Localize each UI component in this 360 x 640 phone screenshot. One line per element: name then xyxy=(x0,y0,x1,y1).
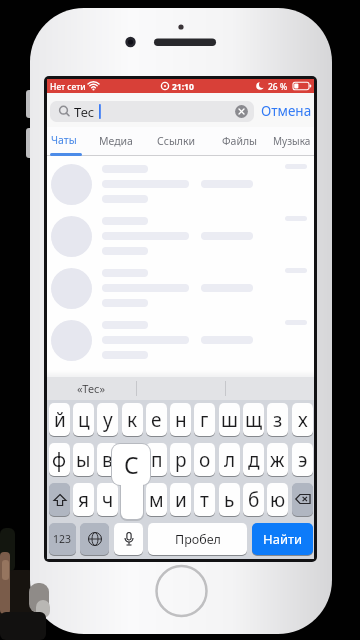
staticText: ю xyxy=(270,487,286,513)
staticText: з xyxy=(273,407,283,433)
staticText: «Тес» xyxy=(77,381,106,396)
button[interactable]: ж xyxy=(267,443,288,476)
staticText: в xyxy=(102,447,113,473)
button[interactable]: и xyxy=(170,483,191,516)
staticText: 123 xyxy=(53,532,72,546)
staticText: а xyxy=(127,447,138,473)
button[interactable]: р xyxy=(170,443,191,476)
button[interactable]: л xyxy=(219,443,240,476)
button[interactable] xyxy=(80,523,109,555)
button[interactable]: э xyxy=(292,443,313,476)
staticText: к xyxy=(127,407,138,433)
button[interactable]: п xyxy=(146,443,167,476)
button[interactable]: щ xyxy=(243,403,264,436)
button[interactable] xyxy=(47,314,314,366)
button[interactable] xyxy=(51,164,92,205)
button[interactable]: ц xyxy=(73,403,94,436)
staticText: щ xyxy=(245,407,263,433)
button[interactable]: в xyxy=(97,443,118,476)
button[interactable]: х xyxy=(292,403,313,436)
button[interactable]: т xyxy=(194,483,215,516)
button[interactable]: ь xyxy=(219,483,240,516)
staticText: ч xyxy=(102,487,114,513)
staticText: ф xyxy=(52,447,67,473)
button[interactable]: Файлы xyxy=(222,134,258,148)
staticText: Медиа xyxy=(99,134,133,148)
button[interactable] xyxy=(47,210,314,262)
button[interactable]: я xyxy=(73,483,94,516)
button[interactable]: ф xyxy=(49,443,70,476)
button[interactable] xyxy=(49,483,70,516)
button[interactable]: Ссылки xyxy=(157,134,196,148)
button[interactable]: Пробел xyxy=(148,523,247,555)
staticText: Ссылки xyxy=(157,134,196,148)
button[interactable] xyxy=(114,523,143,555)
staticText: ы xyxy=(76,447,91,473)
staticText: н xyxy=(175,407,187,433)
button[interactable]: 123 xyxy=(49,523,76,555)
button[interactable]: Чаты xyxy=(51,133,77,147)
staticText: ь xyxy=(224,487,235,513)
button[interactable]: у xyxy=(97,403,118,436)
staticText: э xyxy=(298,447,308,473)
button[interactable]: й xyxy=(49,403,70,436)
staticText: й xyxy=(54,407,66,433)
staticText: у xyxy=(103,407,113,433)
staticText: б xyxy=(248,487,260,513)
button[interactable] xyxy=(292,483,313,516)
button[interactable]: м xyxy=(146,483,167,516)
staticText: Тес xyxy=(74,103,95,121)
button[interactable]: Медиа xyxy=(99,134,133,148)
button[interactable]: ю xyxy=(267,483,288,516)
staticText: о xyxy=(199,447,211,473)
staticText: я xyxy=(78,487,89,513)
button[interactable]: н xyxy=(170,403,191,436)
button[interactable]: а xyxy=(122,443,143,476)
staticText: ц xyxy=(78,407,90,433)
button[interactable] xyxy=(47,262,314,314)
button[interactable]: ы xyxy=(73,443,94,476)
button[interactable]: д xyxy=(243,443,264,476)
button[interactable]: з xyxy=(267,403,288,436)
staticText: Нет сети xyxy=(50,81,86,93)
button[interactable]: б xyxy=(243,483,264,516)
button[interactable]: ш xyxy=(219,403,240,436)
button[interactable] xyxy=(51,320,92,361)
staticText: Найти xyxy=(263,530,303,548)
staticText: С xyxy=(124,449,139,480)
staticText: Музыка xyxy=(273,134,311,148)
button[interactable] xyxy=(50,101,254,122)
staticText: Файлы xyxy=(222,134,258,148)
staticText: м xyxy=(149,487,164,513)
staticText: и xyxy=(175,487,187,513)
staticText: ж xyxy=(270,447,285,473)
staticText: е xyxy=(151,407,162,433)
staticText: д xyxy=(248,447,260,473)
button[interactable]: г xyxy=(194,403,215,436)
button[interactable]: Найти xyxy=(252,523,313,555)
button[interactable] xyxy=(47,158,314,210)
button[interactable]: к xyxy=(122,403,143,436)
button[interactable]: Музыка xyxy=(273,134,311,148)
button[interactable] xyxy=(51,216,92,257)
staticText: г xyxy=(200,407,209,433)
button[interactable]: ч xyxy=(97,483,118,516)
button[interactable]: е xyxy=(146,403,167,436)
staticText: л xyxy=(224,447,236,473)
staticText: п xyxy=(151,447,163,473)
staticText: ш xyxy=(221,407,238,433)
button[interactable] xyxy=(51,268,92,309)
button[interactable]: «Тес» xyxy=(47,377,136,400)
staticText: Чаты xyxy=(51,133,77,147)
staticText: Пробел xyxy=(175,531,221,548)
staticText: 26 % xyxy=(268,81,288,93)
staticText: 21:10 xyxy=(172,81,194,93)
staticText: т xyxy=(200,487,209,513)
button[interactable]: о xyxy=(194,443,215,476)
staticText: х xyxy=(298,407,308,433)
button[interactable]: Отмена xyxy=(261,102,312,120)
